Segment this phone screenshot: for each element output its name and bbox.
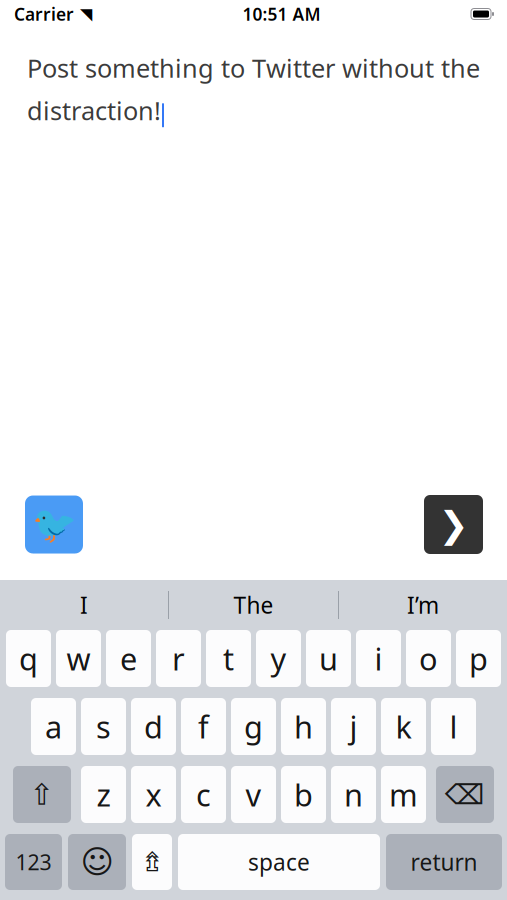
button[interactable]: Emoji [68, 834, 126, 890]
staticText: r [172, 638, 185, 679]
staticText: o [419, 638, 438, 679]
button[interactable]: g [231, 698, 276, 755]
staticText: ◥ [80, 5, 92, 23]
staticText: f [198, 706, 209, 747]
staticText: y [270, 638, 286, 679]
staticText: e [120, 638, 137, 679]
button[interactable]: Shift [13, 766, 71, 823]
staticText: Post something to Twitter without the [27, 51, 480, 85]
staticText: j [349, 706, 357, 747]
staticText: n [344, 774, 363, 815]
button[interactable]: The [169, 583, 338, 627]
staticText: The [233, 590, 273, 620]
button[interactable]: o [406, 630, 451, 687]
staticText: u [319, 638, 338, 679]
button[interactable]: e [106, 630, 151, 687]
staticText: I [80, 590, 88, 620]
button[interactable]: f [181, 698, 226, 755]
button[interactable]: m [381, 766, 426, 823]
staticText: s [96, 706, 111, 747]
button[interactable]: Delete [436, 766, 494, 823]
staticText: g [244, 706, 263, 747]
staticText: ⇧ [29, 778, 54, 811]
staticText: b [294, 774, 313, 815]
button[interactable]: space [178, 834, 380, 890]
button[interactable]: I [0, 583, 168, 627]
staticText: m [389, 774, 418, 815]
staticText: x [145, 774, 161, 815]
button[interactable]: n [331, 766, 376, 823]
button[interactable]: Send [424, 495, 483, 554]
staticText: ❯ [438, 504, 468, 545]
staticText: Carrier [14, 2, 74, 25]
button[interactable]: I’m [339, 583, 507, 627]
button[interactable]: v [231, 766, 276, 823]
staticText: a [45, 706, 62, 747]
staticText: i [374, 638, 382, 679]
button[interactable]: z [81, 766, 126, 823]
button[interactable]: r [156, 630, 201, 687]
staticText: return [410, 847, 477, 877]
button[interactable]: return [386, 834, 502, 890]
staticText: distraction! [27, 94, 161, 127]
staticText: space [248, 847, 310, 877]
staticText: q [19, 638, 38, 679]
staticText: 🐦 [31, 504, 76, 545]
button[interactable]: l [431, 698, 476, 755]
staticText: p [469, 638, 488, 679]
staticText: ⌫ [445, 779, 485, 810]
button[interactable]: h [281, 698, 326, 755]
staticText: 10:51 AM [242, 2, 320, 25]
staticText: d [144, 706, 163, 747]
staticText: l [449, 706, 457, 747]
staticText: ⇯ [141, 847, 163, 877]
button[interactable]: i [356, 630, 401, 687]
button[interactable]: u [306, 630, 351, 687]
button[interactable]: x [131, 766, 176, 823]
button[interactable]: w [56, 630, 101, 687]
staticText: k [395, 706, 411, 747]
button[interactable]: s [81, 698, 126, 755]
button[interactable]: b [281, 766, 326, 823]
button[interactable]: Dictation [132, 834, 172, 890]
staticText: v [245, 774, 261, 815]
staticText: z [96, 774, 110, 815]
button[interactable]: d [131, 698, 176, 755]
staticText: t [223, 638, 234, 679]
staticText: h [294, 706, 313, 747]
button[interactable]: c [181, 766, 226, 823]
button[interactable]: k [381, 698, 426, 755]
staticText: I’m [407, 590, 439, 620]
button[interactable]: 123 [5, 834, 62, 890]
staticText: w [66, 638, 90, 679]
staticText: ☺ [80, 844, 113, 880]
button[interactable]: y [256, 630, 301, 687]
button[interactable]: j [331, 698, 376, 755]
button[interactable]: p [456, 630, 501, 687]
button[interactable]: q [6, 630, 51, 687]
button[interactable]: t [206, 630, 251, 687]
button[interactable]: a [31, 698, 76, 755]
button[interactable]: Post to Twitter [25, 495, 83, 553]
staticText: 123 [15, 848, 51, 876]
staticText: c [196, 774, 211, 815]
